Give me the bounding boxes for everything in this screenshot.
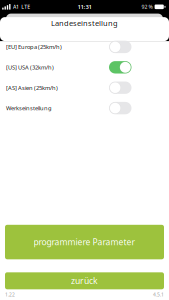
staticText: Werkseinstellung <box>6 104 52 112</box>
staticText: Landeseinstellung <box>51 18 118 28</box>
staticText: 4.5.1 <box>153 291 164 298</box>
staticText: [US] USA (32km/h) <box>6 63 54 71</box>
button[interactable]: zurück <box>5 272 164 289</box>
staticText: 1.22 <box>5 291 15 298</box>
staticText: 11:31 <box>77 3 91 11</box>
button[interactable]: [EU] Europa (25km/h) <box>0 37 169 57</box>
button[interactable]: [AS] Asien (25km/h) <box>0 77 169 98</box>
staticText: [AS] Asien (25km/h) <box>6 84 58 92</box>
staticText: programmiere Parameter <box>33 236 135 248</box>
staticText: LTE <box>21 3 30 10</box>
staticText: A1 <box>13 3 19 10</box>
staticText: zurück <box>71 275 98 287</box>
staticText: 92 % <box>142 3 153 10</box>
button[interactable]: [US] USA (32km/h) <box>0 57 169 77</box>
staticText: [EU] Europa (25km/h) <box>6 43 62 51</box>
button[interactable]: Werkseinstellung <box>0 98 169 118</box>
button[interactable]: programmiere Parameter <box>5 225 164 259</box>
